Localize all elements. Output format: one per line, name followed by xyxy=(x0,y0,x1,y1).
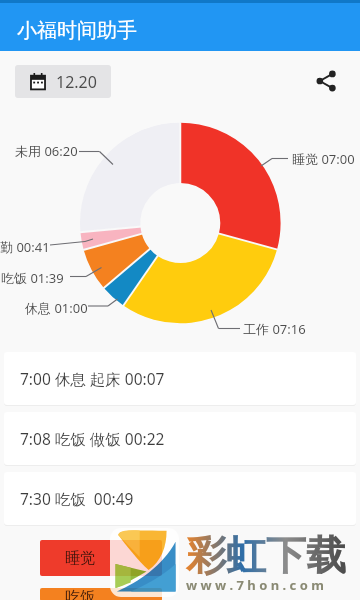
staticText: 工作 07:16 xyxy=(243,320,306,338)
staticText: w w w . 7 h o n . c o m xyxy=(186,576,324,594)
staticText: 12.20 xyxy=(56,71,97,93)
button[interactable]: 7:08 吃饭 做饭 00:22 xyxy=(4,412,356,465)
button[interactable]: 7:30 吃饭 00:49 xyxy=(4,472,356,525)
staticText: 吃饭 01:39 xyxy=(1,269,64,287)
staticText: 7:00 休息 起床 00:07 xyxy=(20,368,165,389)
staticText: 睡觉 xyxy=(65,549,95,568)
staticText: 彩虹下载 xyxy=(186,530,346,580)
staticText: 未用 06:20 xyxy=(15,142,78,160)
staticText: 勤 00:41 xyxy=(0,238,50,256)
staticText: 睡觉 07:00 xyxy=(292,150,355,168)
staticText: 小福时间助手 xyxy=(17,18,137,43)
button[interactable]: 7:00 休息 起床 00:07 xyxy=(4,352,356,405)
button[interactable]: 睡觉 xyxy=(40,540,162,576)
button[interactable]: 吃饭 xyxy=(40,588,162,600)
staticText: 7:08 吃饭 做饭 00:22 xyxy=(20,428,165,449)
staticText: 吃饭 xyxy=(65,588,95,600)
button[interactable]: Share xyxy=(309,64,343,98)
button[interactable]: 12.20 xyxy=(15,65,111,98)
staticText: 7:30 吃饭 00:49 xyxy=(20,488,134,509)
staticText: 休息 01:00 xyxy=(25,299,88,317)
